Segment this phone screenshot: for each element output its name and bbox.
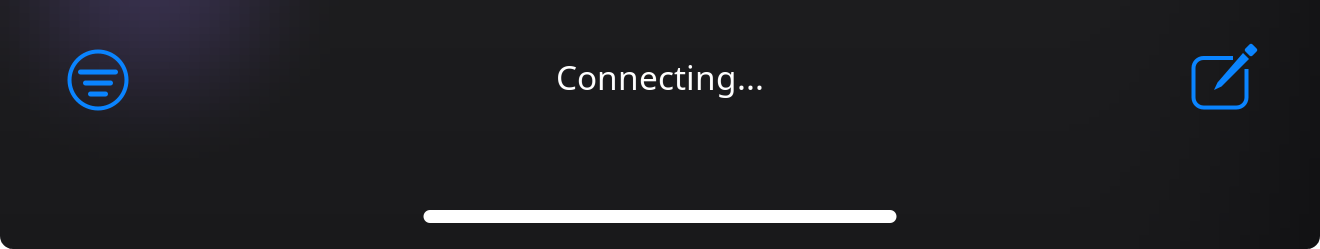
staticText: Connecting...	[556, 55, 764, 99]
button[interactable]: Filter	[59, 41, 137, 119]
button[interactable]: Compose	[1183, 41, 1261, 119]
